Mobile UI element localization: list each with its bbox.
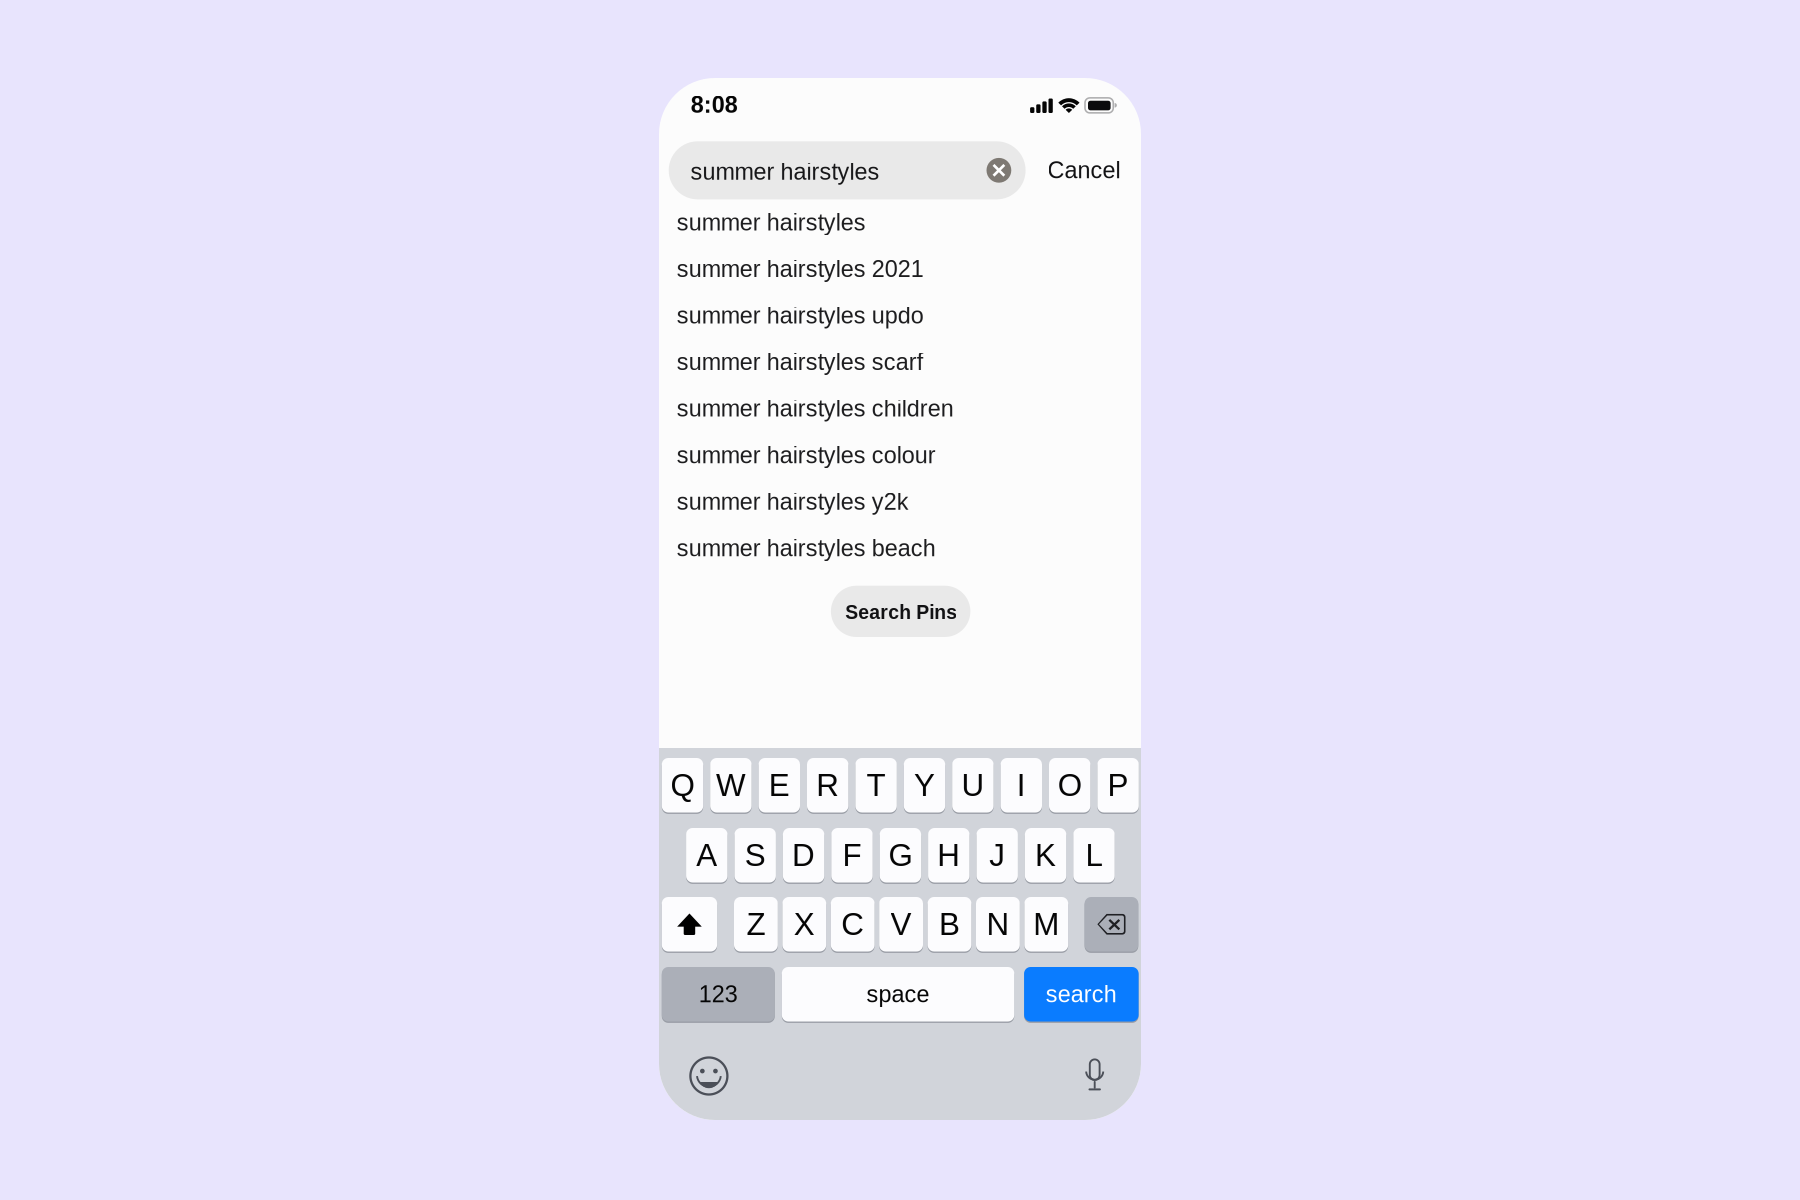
staticText: R xyxy=(816,768,839,803)
button[interactable]: A xyxy=(686,828,727,884)
button[interactable]: U xyxy=(952,758,994,814)
button[interactable]: 123 xyxy=(662,967,775,1023)
staticText: summer hairstyles children xyxy=(677,395,954,422)
button[interactable]: Shift xyxy=(662,897,717,953)
staticText: I xyxy=(1017,768,1026,803)
staticText: D xyxy=(792,838,815,873)
staticText: P xyxy=(1108,768,1129,803)
staticText: C xyxy=(841,907,864,942)
staticText: summer hairstyles colour xyxy=(677,442,936,468)
staticText: summer hairstyles beach xyxy=(677,535,936,561)
staticText: summer hairstyles xyxy=(677,209,866,235)
button[interactable]: T xyxy=(855,758,897,814)
button[interactable]: Z xyxy=(734,897,778,953)
staticText: summer hairstyles xyxy=(690,159,879,185)
button[interactable]: G xyxy=(880,828,921,884)
staticText: summer hairstyles 2021 xyxy=(677,256,924,282)
button[interactable]: summer hairstyles scarf xyxy=(659,336,1141,383)
staticText: S xyxy=(745,838,766,873)
button[interactable]: V xyxy=(879,897,923,953)
staticText: B xyxy=(939,907,960,942)
button[interactable]: P xyxy=(1097,758,1139,814)
button[interactable]: N xyxy=(976,897,1020,953)
staticText: space xyxy=(866,981,929,1007)
staticText: G xyxy=(888,838,912,873)
staticText: V xyxy=(891,907,912,942)
staticText: 123 xyxy=(699,981,738,1007)
button[interactable]: summer hairstyles xyxy=(669,141,1026,199)
button[interactable]: Dictate xyxy=(1085,1059,1104,1093)
button[interactable]: J xyxy=(976,828,1018,884)
staticText: J xyxy=(989,838,1005,873)
button[interactable]: space xyxy=(782,967,1014,1023)
button[interactable]: summer hairstyles colour xyxy=(659,430,1141,476)
staticText: W xyxy=(716,768,746,803)
button[interactable]: summer hairstyles y2k xyxy=(659,476,1141,523)
button[interactable]: F xyxy=(831,828,873,884)
button[interactable]: X xyxy=(782,897,826,953)
button[interactable]: Emoji keyboard xyxy=(690,1057,727,1094)
staticText: Q xyxy=(670,768,694,803)
button[interactable]: O xyxy=(1049,758,1090,814)
button[interactable]: W xyxy=(710,758,752,814)
staticText: L xyxy=(1085,838,1102,873)
staticText: summer hairstyles scarf xyxy=(677,349,923,375)
button[interactable]: summer hairstyles 2021 xyxy=(659,243,1141,290)
staticText: Search Pins xyxy=(845,601,957,623)
button[interactable]: Search Pins xyxy=(831,586,970,637)
button[interactable]: summer hairstyles updo xyxy=(659,290,1141,336)
button[interactable]: L xyxy=(1073,828,1115,884)
staticText: X xyxy=(794,907,815,942)
staticText: H xyxy=(937,838,960,873)
staticText: 8:08 xyxy=(691,92,738,118)
staticText: search xyxy=(1046,981,1117,1007)
staticText: Y xyxy=(914,768,935,803)
button[interactable]: search xyxy=(1024,967,1139,1023)
button[interactable]: Delete xyxy=(1085,897,1138,953)
staticText: Z xyxy=(746,907,765,942)
button[interactable]: D xyxy=(783,828,824,884)
button[interactable]: Q xyxy=(662,758,703,814)
button[interactable]: K xyxy=(1025,828,1066,884)
button[interactable]: summer hairstyles children xyxy=(659,383,1141,429)
staticText: U xyxy=(961,768,984,803)
button[interactable]: M xyxy=(1024,897,1068,953)
staticText: O xyxy=(1058,768,1082,803)
button[interactable]: E xyxy=(759,758,800,814)
button[interactable]: Cancel xyxy=(1040,141,1112,199)
staticText: Cancel xyxy=(1047,157,1120,183)
staticText: K xyxy=(1035,838,1056,873)
button[interactable]: C xyxy=(831,897,875,953)
button[interactable]: H xyxy=(928,828,969,884)
staticText: N xyxy=(986,907,1009,942)
button[interactable]: Y xyxy=(904,758,945,814)
staticText: T xyxy=(867,768,886,803)
staticText: summer hairstyles y2k xyxy=(677,489,909,515)
button[interactable]: B xyxy=(928,897,971,953)
staticText: summer hairstyles updo xyxy=(677,302,924,328)
button[interactable]: I xyxy=(1001,758,1042,814)
button[interactable]: Clear search text xyxy=(986,158,1011,183)
staticText: M xyxy=(1033,907,1059,942)
staticText: E xyxy=(769,768,790,803)
button[interactable]: summer hairstyles beach xyxy=(659,523,1141,569)
staticText: F xyxy=(842,838,861,873)
staticText: A xyxy=(696,838,717,873)
button[interactable]: summer hairstyles xyxy=(659,197,1141,243)
button[interactable]: R xyxy=(807,758,848,814)
button[interactable]: S xyxy=(734,828,776,884)
